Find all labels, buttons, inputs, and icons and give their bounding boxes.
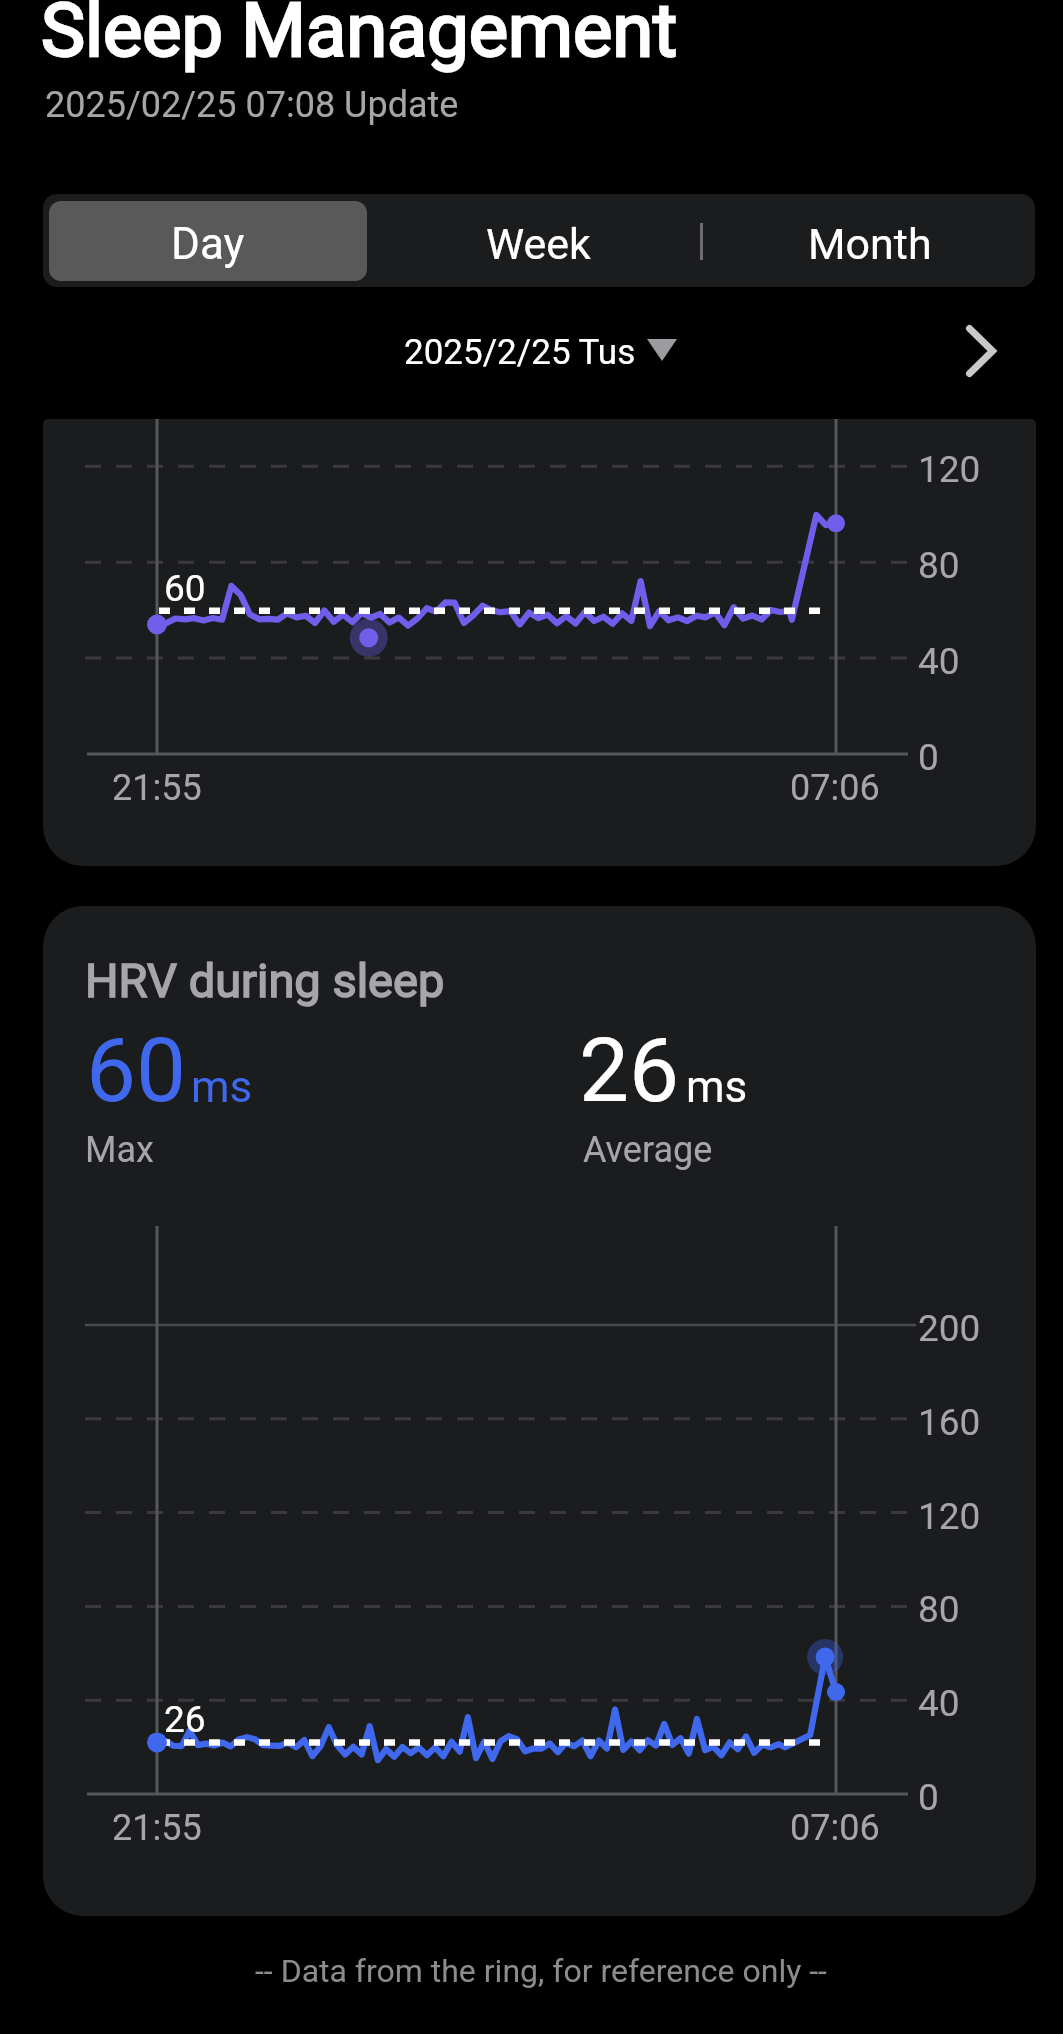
staticText: 60 <box>164 567 206 610</box>
button[interactable]: Next day <box>946 316 1016 386</box>
staticText: Max <box>85 1129 154 1171</box>
staticText: 200 <box>918 1307 981 1350</box>
staticText: ms <box>686 1061 748 1113</box>
staticText: Month <box>808 219 932 269</box>
staticText: 40 <box>918 640 960 683</box>
button[interactable]: Month <box>704 194 1035 287</box>
staticText: 0 <box>918 1776 939 1819</box>
button[interactable]: 0 <box>43 419 1036 866</box>
staticText: HRV during sleep <box>85 953 445 1008</box>
staticText: 07:06 <box>790 1807 880 1849</box>
staticText: 60 <box>86 1018 187 1122</box>
staticText: Day <box>171 218 245 270</box>
staticText: 21:55 <box>112 1807 202 1849</box>
button[interactable]: HRV during sleep <box>43 906 1036 1916</box>
staticText: 120 <box>918 1495 981 1538</box>
staticText: Average <box>583 1129 713 1171</box>
button[interactable]: Week <box>373 194 704 287</box>
staticText: Sleep Management <box>41 0 678 74</box>
staticText: 0 <box>918 736 939 779</box>
staticText: Week <box>486 219 591 269</box>
staticText: 40 <box>918 1682 960 1725</box>
staticText: -- Data from the ring, for reference onl… <box>255 1952 827 1990</box>
staticText: 160 <box>918 1401 981 1444</box>
staticText: 120 <box>918 448 981 491</box>
staticText: 07:06 <box>790 767 880 809</box>
staticText: 26 <box>579 1018 680 1122</box>
staticText: 2025/2/25 Tus <box>404 332 636 373</box>
staticText: 80 <box>918 544 960 587</box>
button[interactable]: Day <box>49 201 367 281</box>
staticText: ms <box>191 1061 253 1113</box>
staticText: 21:55 <box>112 767 202 809</box>
staticText: 2025/02/25 07:08 Update <box>45 84 459 126</box>
staticText: 80 <box>918 1588 960 1631</box>
button[interactable]: 2025/2/25 Tus <box>404 322 677 382</box>
staticText: 26 <box>164 1698 206 1741</box>
